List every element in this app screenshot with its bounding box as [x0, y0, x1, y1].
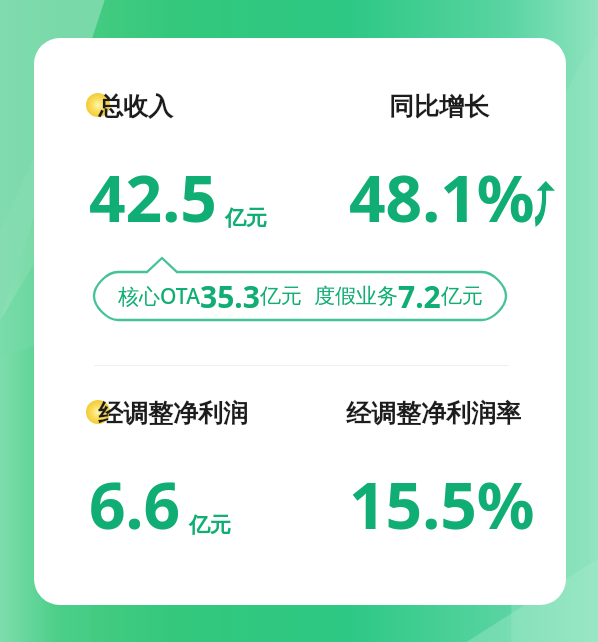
staticText: 48.1% — [349, 154, 535, 241]
staticText: 同比增长 — [389, 91, 489, 122]
button[interactable] — [94, 258, 506, 320]
button[interactable]: 总收入 — [34, 38, 566, 605]
staticText: 度假业务 — [314, 283, 398, 309]
other: Increase — [535, 181, 562, 227]
staticText: 亿元 — [189, 512, 231, 538]
staticText: 亿元 — [225, 205, 267, 231]
staticText: 35.3 — [200, 276, 260, 317]
staticText: 总收入 — [98, 91, 173, 122]
staticText: 42.5 — [89, 154, 217, 241]
staticText: 亿元 — [260, 283, 302, 309]
staticText: 7.2 — [398, 276, 441, 317]
staticText: 亿元 — [441, 283, 483, 309]
staticText: 6.6 — [89, 461, 181, 548]
staticText: 15.5% — [349, 461, 535, 548]
staticText: 核心OTA — [118, 282, 200, 311]
staticText: 经调整净利润率 — [346, 398, 521, 429]
staticText: 经调整净利润 — [98, 398, 248, 429]
